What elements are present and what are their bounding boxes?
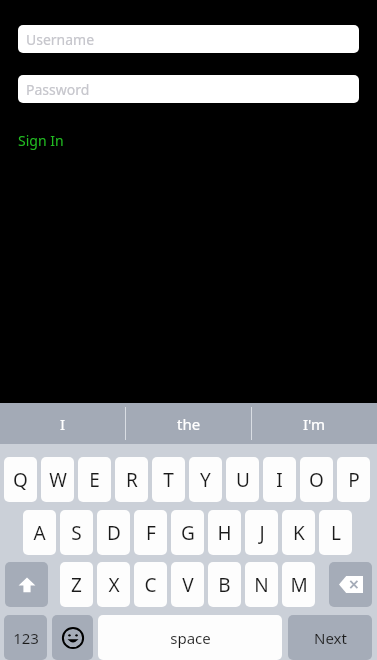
staticText: A bbox=[33, 520, 46, 546]
button[interactable]: D bbox=[97, 510, 130, 555]
button[interactable]: Shift bbox=[5, 562, 48, 607]
staticText: B bbox=[218, 572, 231, 598]
staticText: space bbox=[170, 628, 211, 648]
button[interactable]: I bbox=[263, 457, 296, 502]
staticText: Y bbox=[200, 467, 211, 493]
button[interactable]: Y bbox=[189, 457, 222, 502]
button[interactable]: J bbox=[245, 510, 278, 555]
staticText: Next bbox=[314, 628, 347, 648]
button[interactable]: H bbox=[208, 510, 241, 555]
staticText: O bbox=[309, 467, 324, 493]
button[interactable]: E bbox=[78, 457, 111, 502]
staticText: H bbox=[217, 520, 232, 546]
staticText: Z bbox=[71, 572, 82, 598]
button[interactable]: O bbox=[300, 457, 333, 502]
staticText: E bbox=[89, 467, 100, 493]
button[interactable]: B bbox=[208, 562, 241, 607]
button[interactable]: space bbox=[98, 615, 282, 660]
button[interactable]: V bbox=[171, 562, 204, 607]
staticText: I bbox=[276, 467, 283, 493]
button[interactable]: A bbox=[23, 510, 56, 555]
button[interactable]: Sign In bbox=[18, 129, 64, 151]
staticText: W bbox=[49, 467, 67, 493]
button[interactable]: Password bbox=[18, 75, 359, 103]
staticText: the bbox=[177, 414, 201, 434]
staticText: I'm bbox=[303, 414, 326, 434]
staticText: K bbox=[293, 520, 305, 546]
button[interactable]: P bbox=[337, 457, 370, 502]
button[interactable]: C bbox=[134, 562, 167, 607]
button[interactable]: I'm bbox=[252, 403, 377, 444]
staticText: N bbox=[254, 572, 269, 598]
staticText: C bbox=[144, 572, 157, 598]
staticText: M bbox=[290, 572, 308, 598]
button[interactable]: F bbox=[134, 510, 167, 555]
button[interactable]: Q bbox=[4, 457, 37, 502]
staticText: F bbox=[146, 520, 156, 546]
button[interactable]: W bbox=[41, 457, 74, 502]
staticText: Password bbox=[26, 80, 90, 99]
button[interactable]: I bbox=[0, 403, 126, 444]
button[interactable]: M bbox=[282, 562, 315, 607]
button[interactable]: Z bbox=[60, 562, 93, 607]
staticText: X bbox=[108, 572, 120, 598]
button[interactable]: Username bbox=[18, 25, 359, 53]
staticText: U bbox=[236, 467, 250, 493]
staticText: S bbox=[71, 520, 82, 546]
button[interactable]: S bbox=[60, 510, 93, 555]
staticText: T bbox=[163, 467, 174, 493]
staticText: 123 bbox=[13, 628, 39, 648]
button[interactable]: X bbox=[97, 562, 130, 607]
button[interactable]: U bbox=[226, 457, 259, 502]
button[interactable]: Delete bbox=[329, 562, 372, 607]
staticText: J bbox=[259, 520, 265, 546]
staticText: G bbox=[181, 520, 195, 546]
button[interactable]: the bbox=[126, 403, 252, 444]
staticText: Q bbox=[13, 467, 28, 493]
staticText: V bbox=[182, 572, 194, 598]
staticText: Sign In bbox=[18, 131, 64, 150]
button[interactable]: 123 bbox=[4, 615, 47, 660]
button[interactable]: G bbox=[171, 510, 204, 555]
staticText: D bbox=[107, 520, 121, 546]
button[interactable]: Emoji bbox=[52, 615, 93, 660]
staticText: P bbox=[348, 467, 360, 493]
button[interactable]: Next bbox=[288, 615, 372, 660]
staticText: R bbox=[126, 467, 138, 493]
staticText: I bbox=[60, 414, 66, 434]
button[interactable]: T bbox=[152, 457, 185, 502]
button[interactable]: L bbox=[319, 510, 352, 555]
button[interactable]: R bbox=[115, 457, 148, 502]
staticText: L bbox=[331, 520, 341, 546]
staticText: Username bbox=[26, 30, 95, 49]
button[interactable]: K bbox=[282, 510, 315, 555]
button[interactable]: N bbox=[245, 562, 278, 607]
